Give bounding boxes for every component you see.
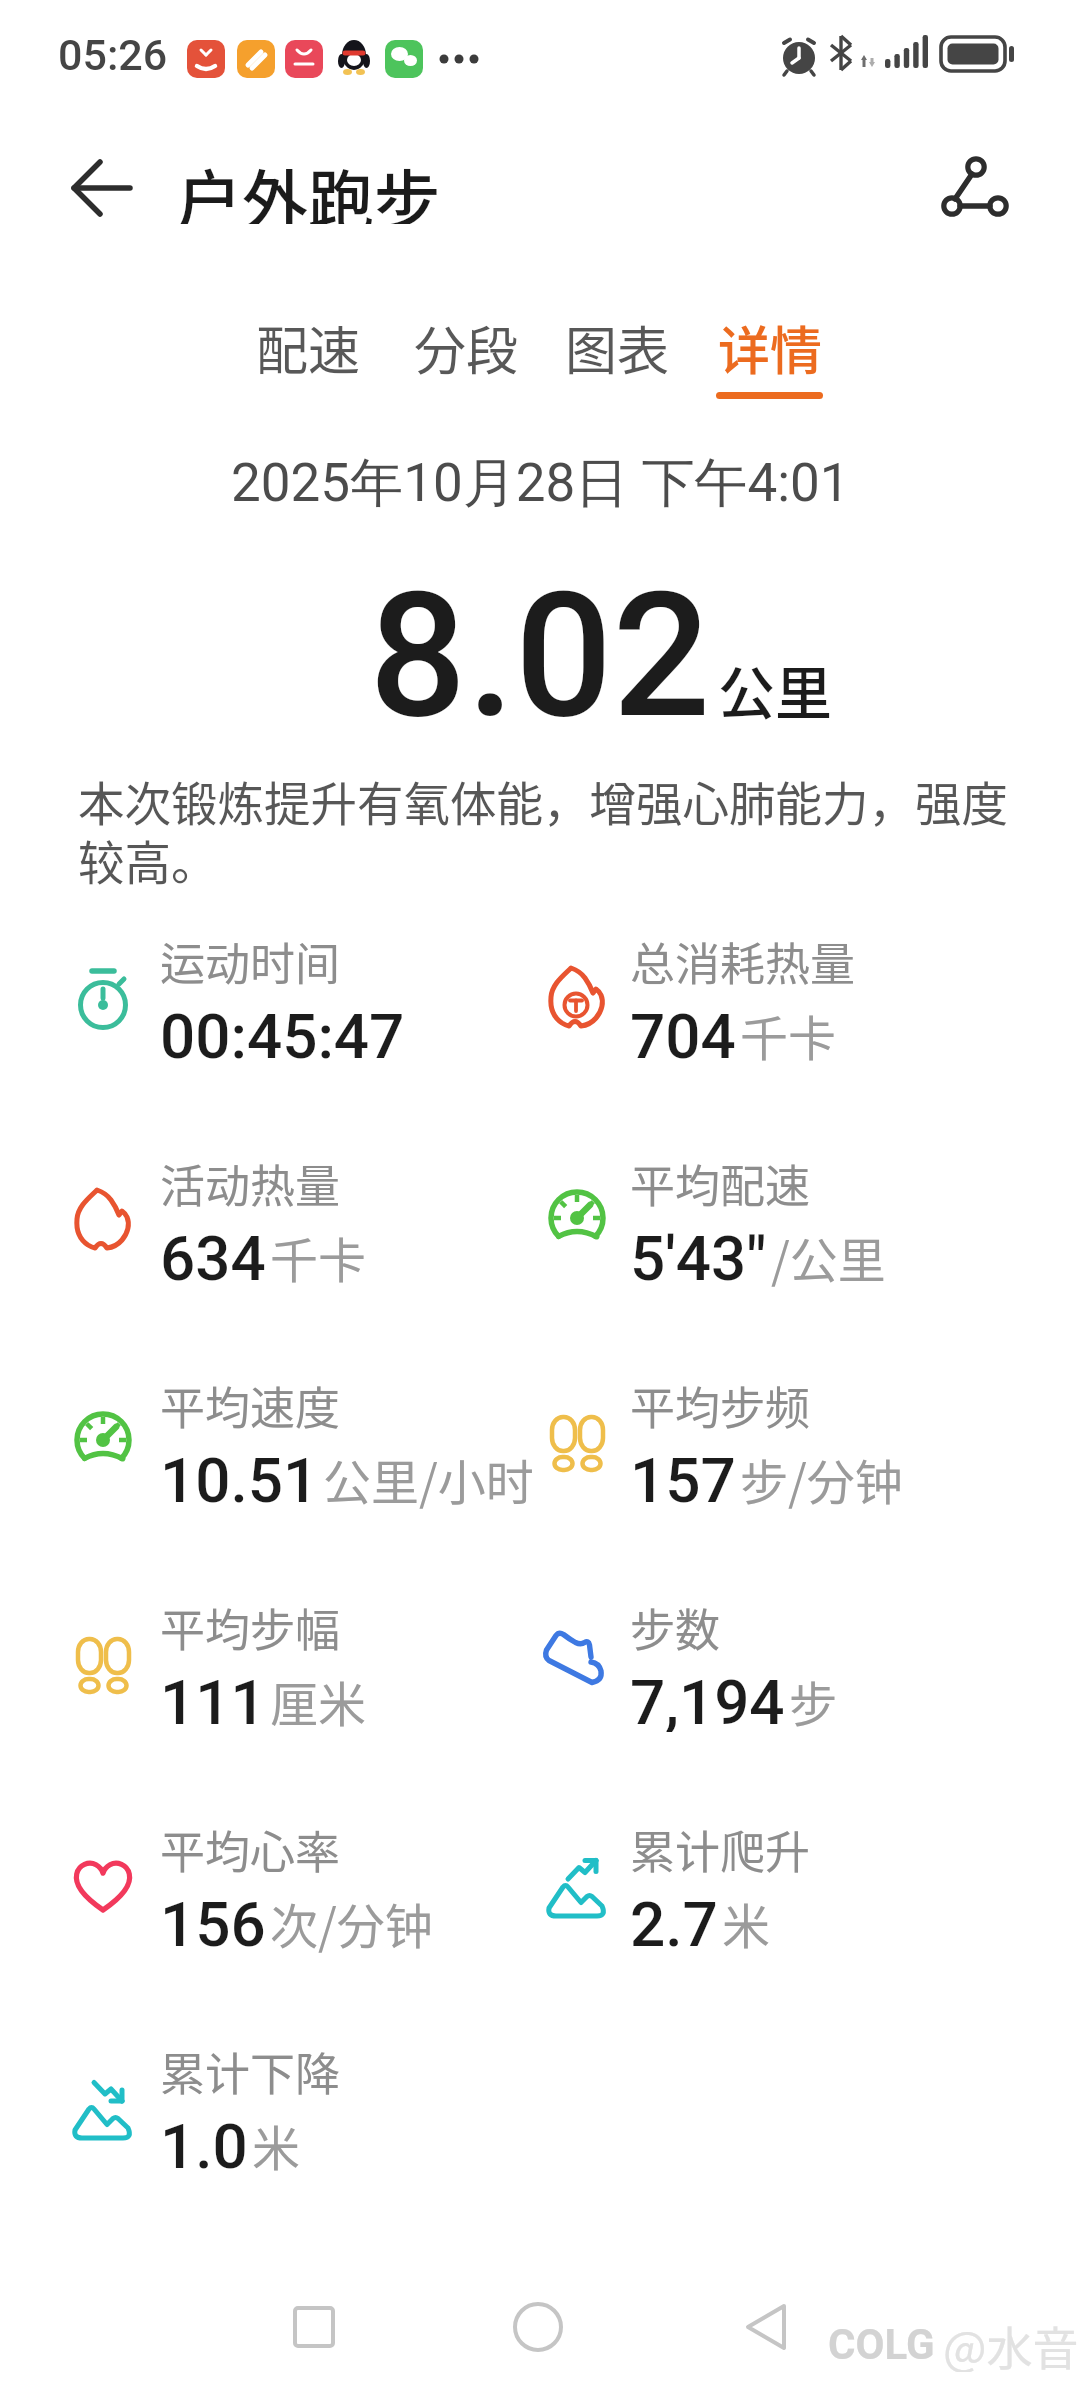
staticText: 累计爬升 — [630, 1817, 811, 1879]
staticText: 步/分钟 — [740, 1444, 903, 1510]
staticText: 图表 — [565, 310, 670, 385]
staticText: 公里/小时 — [323, 1444, 534, 1510]
staticText: 米 — [252, 2110, 301, 2176]
staticText: 111 — [160, 1666, 266, 1732]
staticText: 5'43" — [630, 1222, 767, 1288]
button[interactable]: 配速 — [232, 306, 384, 388]
staticText: 平均心率 — [160, 1817, 341, 1879]
staticText: COLG — [828, 2320, 935, 2369]
staticText: 米 — [722, 1888, 771, 1954]
staticText: 累计下降 — [160, 2039, 341, 2101]
staticText: 厘米 — [270, 1666, 367, 1732]
staticText: 00:45:47 — [160, 1000, 405, 1066]
staticText: 平均步频 — [630, 1373, 811, 1435]
staticText: 总消耗热量 — [630, 929, 856, 991]
button[interactable]: 详情 — [694, 306, 846, 388]
button[interactable] — [498, 2287, 578, 2367]
staticText: 平均速度 — [160, 1373, 341, 1435]
staticText: 平均步幅 — [160, 1595, 341, 1657]
staticText: 配速 — [256, 310, 361, 385]
staticText: 平均配速 — [630, 1151, 811, 1213]
button[interactable] — [274, 2287, 354, 2367]
button[interactable] — [56, 144, 148, 232]
staticText: 1.0 — [160, 2110, 248, 2176]
staticText: 2.7 — [630, 1888, 718, 1954]
staticText: 2025年10月28日 下午4:01 — [231, 450, 850, 516]
staticText: 634 — [160, 1222, 266, 1288]
staticText: 次/分钟 — [270, 1888, 433, 1954]
staticText: 05:26 — [58, 30, 168, 76]
button[interactable] — [916, 134, 1026, 238]
staticText: 运动时间 — [160, 929, 341, 991]
staticText: 千卡 — [740, 1000, 837, 1066]
staticText: /公里 — [771, 1222, 886, 1288]
staticText: 704 — [630, 1000, 736, 1066]
staticText: 户外跑步 — [176, 148, 440, 224]
staticText: 157 — [630, 1444, 736, 1510]
button[interactable]: 分段 — [390, 306, 542, 388]
staticText: 8.02 — [369, 555, 711, 739]
staticText: 步 — [789, 1666, 838, 1732]
staticText: 详情 — [718, 310, 823, 385]
staticText: 千卡 — [270, 1222, 367, 1288]
staticText: 步数 — [630, 1595, 721, 1657]
staticText: 分段 — [414, 310, 519, 385]
staticText: 7,194 — [630, 1666, 785, 1732]
staticText: 活动热量 — [160, 1151, 341, 1213]
staticText: @水音 — [943, 2312, 1079, 2372]
staticText: 公里 — [718, 648, 832, 728]
button[interactable]: 图表 — [541, 306, 693, 388]
button[interactable] — [726, 2287, 806, 2367]
staticText: 156 — [160, 1888, 266, 1954]
staticText: 本次锻炼提升有氧体能，增强心肺能力，强度较高。 — [78, 767, 1028, 894]
staticText: 10.51 — [160, 1444, 319, 1510]
